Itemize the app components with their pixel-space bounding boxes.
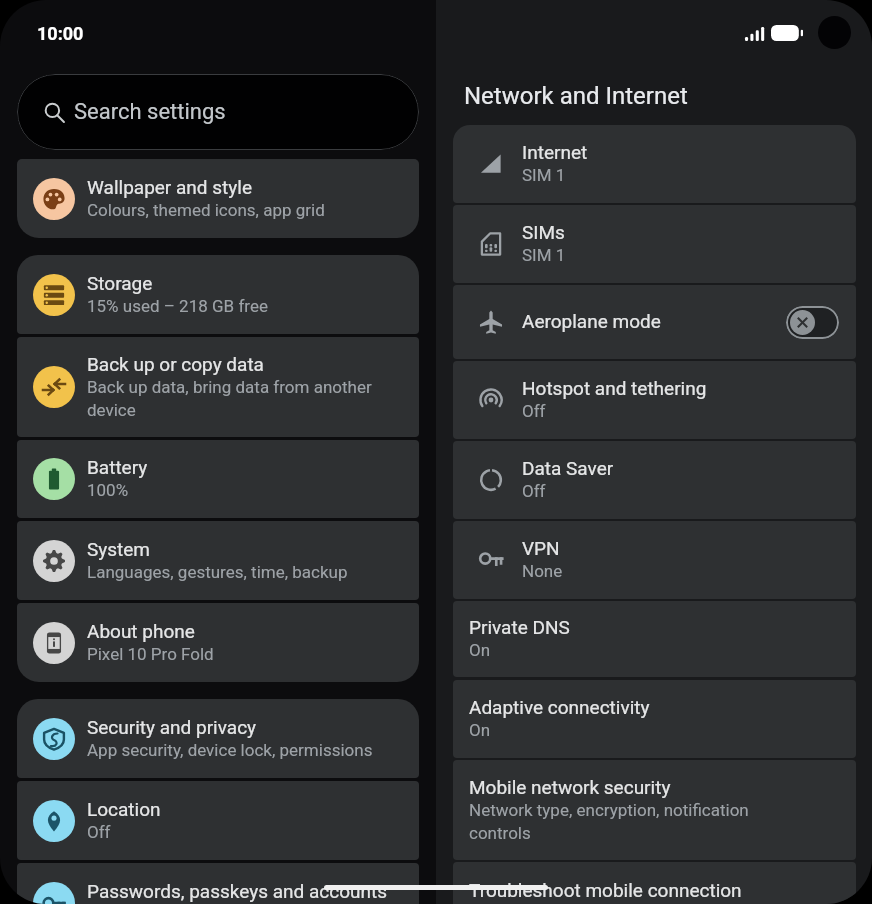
staticText: Network type, encryption, notification c… (469, 800, 749, 843)
staticText: Back up data, bring data from another de… (87, 377, 372, 420)
button[interactable]: Location (17, 781, 419, 860)
staticText: Search settings (74, 99, 226, 125)
staticText: Languages, gestures, time, backup (87, 562, 348, 582)
staticText: App security, device lock, permissions (87, 740, 373, 760)
staticText: Battery (87, 456, 148, 478)
staticText: On (469, 720, 491, 740)
staticText: Wallpaper and style (87, 176, 252, 198)
staticText: Network and Internet (464, 82, 688, 110)
button[interactable]: System (17, 521, 419, 600)
staticText: Back up or copy data (87, 353, 264, 375)
button[interactable]: Data Saver (453, 441, 856, 519)
staticText: Aeroplane mode (522, 310, 661, 332)
staticText: 15% used – 218 GB free (87, 296, 268, 316)
button[interactable]: Passwords, passkeys and accounts (17, 863, 419, 904)
staticText: SIM 1 (522, 165, 566, 185)
staticText: Troubleshoot mobile connection (469, 879, 742, 901)
staticText: Adaptive connectivity (469, 696, 650, 718)
staticText: Passwords, passkeys and accounts (87, 880, 388, 902)
staticText: Hotspot and tethering (522, 377, 707, 399)
staticText: Colours, themed icons, app grid (87, 200, 325, 220)
button[interactable]: Private DNS (453, 601, 856, 677)
button[interactable]: Adaptive connectivity (453, 680, 856, 758)
button[interactable]: About phone (17, 603, 419, 682)
staticText: Off (87, 822, 111, 842)
staticText: 100% (87, 480, 129, 500)
staticText: Location (87, 798, 161, 820)
button[interactable]: Hotspot and tethering (453, 361, 856, 439)
button[interactable]: Wallpaper and style (17, 159, 419, 238)
staticText: Data Saver (522, 457, 614, 479)
staticText: Pixel 10 Pro Fold (87, 644, 214, 664)
staticText: SIMs (522, 221, 565, 243)
button[interactable]: Aeroplane mode toggle, off (786, 306, 839, 339)
button[interactable]: VPN (453, 521, 856, 599)
button[interactable]: Search settings (17, 74, 419, 150)
button[interactable]: Internet (453, 125, 856, 203)
staticText: VPN (522, 537, 560, 559)
staticText: On (469, 640, 491, 660)
staticText: Internet (522, 141, 588, 163)
button[interactable]: SIMs (453, 205, 856, 283)
staticText: Storage (87, 272, 153, 294)
staticText: 10:00 (37, 23, 84, 44)
button[interactable]: Troubleshoot mobile connection (453, 862, 856, 904)
staticText: Mobile network security (469, 776, 671, 798)
staticText: Private DNS (469, 616, 570, 638)
button[interactable]: Back up or copy data (17, 337, 419, 437)
staticText: SIM 1 (522, 245, 566, 265)
button[interactable]: Aeroplane mode (453, 285, 856, 359)
staticText: Off (522, 401, 546, 421)
staticText: Security and privacy (87, 716, 257, 738)
button[interactable]: Battery (17, 440, 419, 518)
button[interactable]: Security and privacy (17, 699, 419, 778)
staticText: System (87, 538, 151, 560)
staticText: About phone (87, 620, 195, 642)
button[interactable]: Storage (17, 255, 419, 334)
staticText: None (522, 561, 563, 581)
staticText: Off (522, 481, 546, 501)
button[interactable]: Mobile network security (453, 760, 856, 860)
